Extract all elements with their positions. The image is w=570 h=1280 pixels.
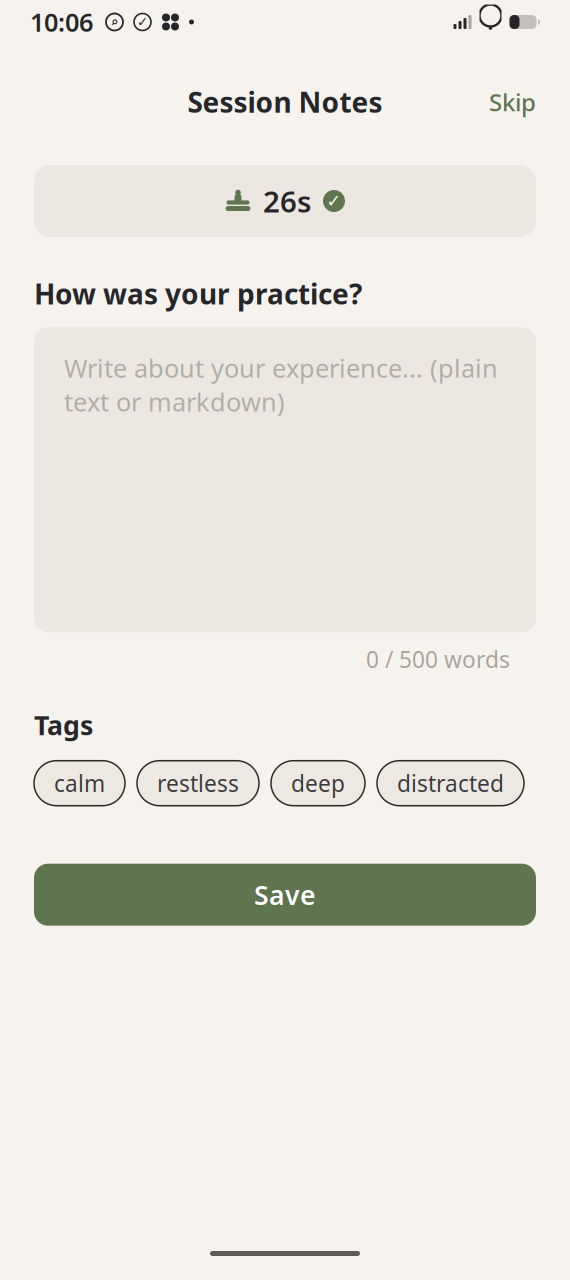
staticText: distracted [397,768,504,798]
button[interactable]: deep [271,761,365,806]
staticText: 26s [263,181,311,220]
button[interactable]: distracted [377,761,524,806]
staticText: ⌕ [110,14,118,29]
staticText: calm [54,768,105,798]
staticText: 0 / 500 words [366,644,510,674]
staticText: Write about your experience... (plain te… [64,351,498,418]
staticText: ✓ [137,14,148,29]
staticText: ✓ [326,191,341,211]
staticText: Skip [489,86,536,118]
staticText: restless [157,768,239,798]
button[interactable]: calm [34,761,125,806]
staticText: Save [254,877,316,912]
staticText: How was your practice? [34,275,362,312]
staticText: 10:06 [30,5,93,39]
button[interactable]: Save [34,864,536,926]
staticText: Tags [34,707,93,743]
button[interactable]: Skip [477,78,548,126]
button[interactable]: restless [137,761,259,806]
staticText: Session Notes [187,83,382,121]
staticText: deep [291,768,345,798]
